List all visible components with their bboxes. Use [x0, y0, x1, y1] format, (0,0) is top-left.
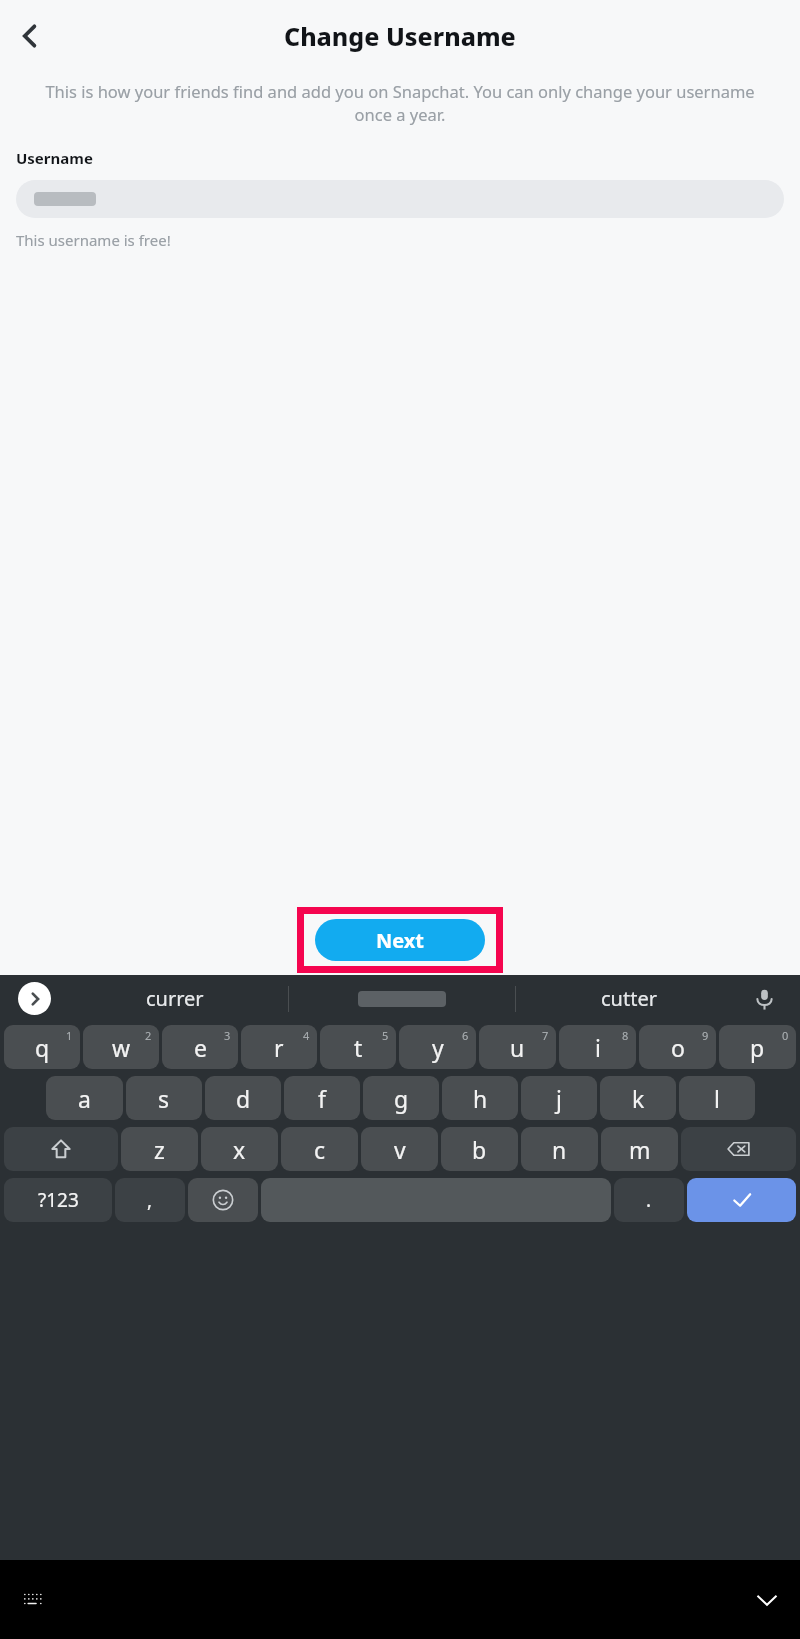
button[interactable]: ,: [115, 1178, 185, 1222]
button[interactable]: n: [521, 1127, 598, 1171]
staticText: d: [236, 1083, 251, 1114]
staticText: r: [274, 1032, 284, 1063]
button[interactable]: s: [126, 1076, 202, 1120]
staticText: l: [714, 1083, 720, 1114]
staticText: .: [646, 1187, 652, 1213]
staticText: 6: [462, 1028, 469, 1043]
staticText: currer: [146, 985, 204, 1012]
staticText: o: [671, 1032, 685, 1063]
button[interactable]: q: [4, 1025, 80, 1069]
staticText: j: [556, 1083, 562, 1114]
button[interactable]: b: [441, 1127, 518, 1171]
button[interactable]: r: [241, 1025, 317, 1069]
button[interactable]: m: [601, 1127, 678, 1171]
button[interactable]: e: [162, 1025, 238, 1069]
button[interactable]: c: [281, 1127, 358, 1171]
button[interactable]: Shift: [4, 1127, 118, 1171]
button[interactable]: u: [479, 1025, 556, 1069]
button[interactable]: Back: [8, 14, 52, 58]
button[interactable]: x: [201, 1127, 278, 1171]
staticText: y: [432, 1032, 444, 1063]
button[interactable]: Enter: [687, 1178, 796, 1222]
staticText: ?123: [38, 1187, 79, 1213]
staticText: c: [314, 1134, 326, 1165]
button[interactable]: p: [719, 1025, 796, 1069]
button[interactable]: o: [639, 1025, 716, 1069]
staticText: e: [194, 1032, 207, 1063]
button[interactable]: k: [600, 1076, 676, 1120]
button[interactable]: More suggestions: [18, 982, 51, 1015]
button[interactable]: f: [284, 1076, 360, 1120]
button[interactable]: g: [363, 1076, 439, 1120]
button[interactable]: Hide keyboard: [744, 1577, 790, 1623]
staticText: 2: [145, 1028, 152, 1043]
staticText: cutter: [601, 985, 657, 1012]
staticText: x: [233, 1134, 246, 1165]
button[interactable]: currer: [62, 975, 288, 1022]
staticText: v: [394, 1134, 406, 1165]
staticText: k: [632, 1083, 645, 1114]
button[interactable]: .: [614, 1178, 684, 1222]
button[interactable]: j: [521, 1076, 597, 1120]
staticText: 1: [66, 1028, 73, 1043]
staticText: ,: [147, 1187, 153, 1213]
button[interactable]: Next: [315, 919, 485, 961]
staticText: h: [473, 1083, 488, 1114]
staticText: u: [510, 1032, 525, 1063]
staticText: This username is free!: [16, 230, 171, 250]
staticText: q: [35, 1032, 50, 1063]
staticText: t: [354, 1032, 363, 1063]
staticText: i: [595, 1032, 601, 1063]
staticText: 8: [622, 1028, 629, 1043]
staticText: a: [78, 1083, 91, 1114]
button[interactable]: h: [442, 1076, 518, 1120]
staticText: Change Username: [284, 19, 516, 53]
button[interactable]: ?123: [4, 1178, 112, 1222]
staticText: b: [472, 1134, 487, 1165]
button[interactable]: w: [83, 1025, 159, 1069]
button[interactable]: d: [205, 1076, 281, 1120]
button[interactable]: i: [559, 1025, 636, 1069]
staticText: 4: [303, 1028, 310, 1043]
staticText: f: [318, 1083, 326, 1114]
staticText: 3: [224, 1028, 231, 1043]
button[interactable]: v: [361, 1127, 438, 1171]
button[interactable]: cutter: [516, 975, 742, 1022]
button[interactable]: Switch keyboard: [10, 1577, 56, 1623]
button[interactable]: z: [121, 1127, 198, 1171]
button[interactable]: Backspace: [681, 1127, 796, 1171]
staticText: Next: [376, 927, 425, 954]
staticText: Username: [16, 148, 93, 168]
button[interactable]: l: [679, 1076, 755, 1120]
staticText: 5: [382, 1028, 389, 1043]
button[interactable]: Emoji: [188, 1178, 258, 1222]
staticText: z: [154, 1134, 165, 1165]
button[interactable]: t: [320, 1025, 396, 1069]
staticText: This is how your friends find and add yo…: [32, 80, 768, 126]
staticText: g: [394, 1083, 409, 1114]
button[interactable]: Voice input: [742, 977, 786, 1021]
button[interactable]: [16, 180, 784, 218]
staticText: n: [552, 1134, 567, 1165]
staticText: w: [112, 1032, 131, 1063]
staticText: s: [158, 1083, 170, 1114]
staticText: 0: [782, 1028, 789, 1043]
staticText: m: [629, 1134, 651, 1165]
staticText: 7: [542, 1028, 549, 1043]
staticText: 9: [702, 1028, 709, 1043]
button[interactable]: a: [46, 1076, 123, 1120]
button[interactable]: y: [399, 1025, 476, 1069]
button[interactable]: [289, 975, 515, 1022]
staticText: p: [750, 1032, 765, 1063]
